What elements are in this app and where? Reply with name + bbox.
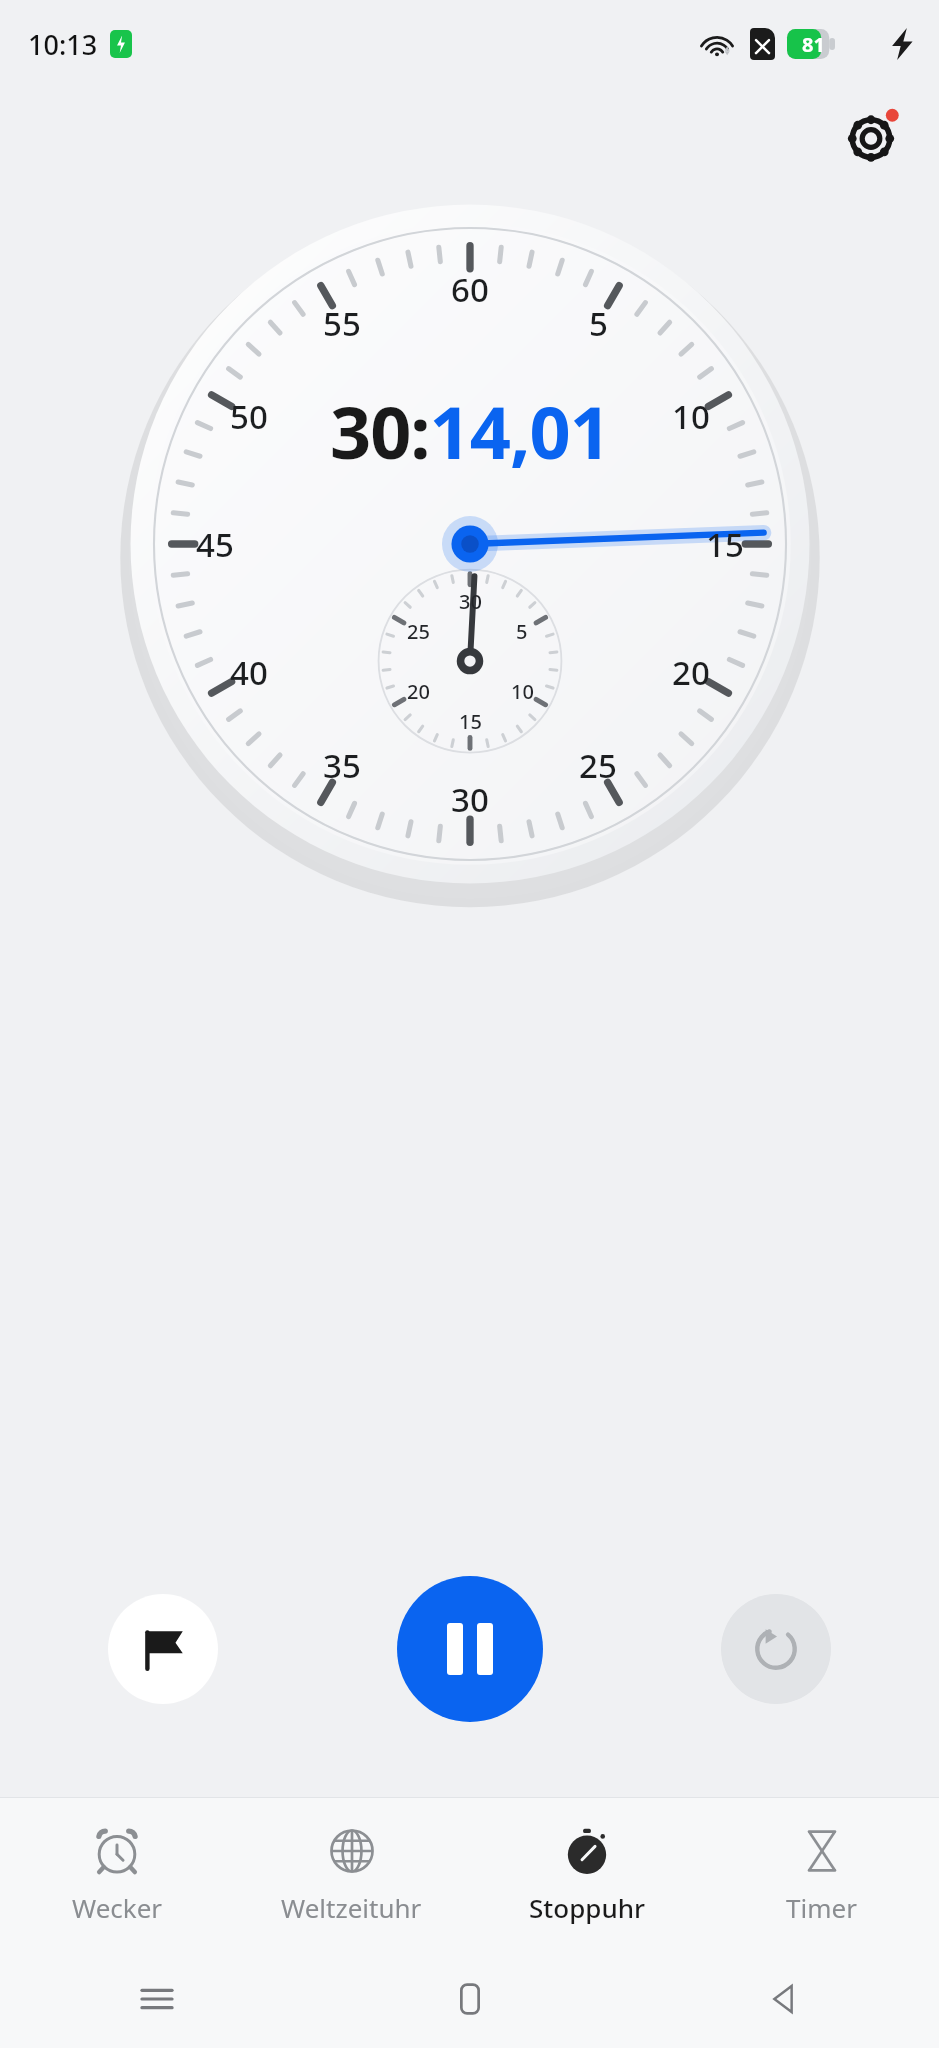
staticText: 10 (511, 678, 534, 705)
staticText: 50 (230, 394, 268, 439)
button[interactable]: Wecker (0, 1816, 234, 1933)
button[interactable]: Back (626, 1950, 939, 2048)
staticText: Weltzeituhr (281, 1890, 422, 1925)
button[interactable]: Lap (108, 1594, 218, 1704)
staticText: Stoppuhr (529, 1890, 645, 1925)
staticText: 55 (323, 301, 361, 346)
button[interactable]: Home (313, 1950, 626, 2048)
staticText: 5 (516, 618, 528, 645)
staticText: Timer (786, 1890, 857, 1925)
button[interactable]: Weltzeituhr (234, 1816, 469, 1933)
staticText: 25 (579, 743, 617, 788)
button[interactable]: Pause (397, 1576, 543, 1722)
staticText: 40 (230, 650, 268, 695)
staticText: 25 (407, 618, 430, 645)
staticText: 30 (459, 588, 482, 615)
button[interactable]: Timer (704, 1816, 939, 1933)
staticText: 81 (802, 31, 825, 58)
button[interactable]: Settings (835, 100, 907, 172)
staticText: 20 (407, 678, 430, 705)
staticText: 35 (323, 743, 361, 788)
staticText: Wecker (72, 1890, 163, 1925)
button[interactable]: Recents (0, 1950, 313, 2048)
staticText: 30:14,01 (330, 382, 610, 480)
staticText: 60 (451, 267, 489, 312)
staticText: 45 (196, 522, 234, 567)
staticText: 5 (589, 301, 608, 346)
staticText: 30 (451, 777, 489, 822)
button[interactable]: Stoppuhr (469, 1816, 704, 1933)
staticText: 15 (459, 708, 482, 735)
staticText: 20 (672, 650, 710, 695)
button[interactable]: Reset (721, 1594, 831, 1704)
staticText: 10:13 (28, 26, 98, 63)
staticText: 10 (672, 394, 710, 439)
staticText: 15 (706, 522, 744, 567)
